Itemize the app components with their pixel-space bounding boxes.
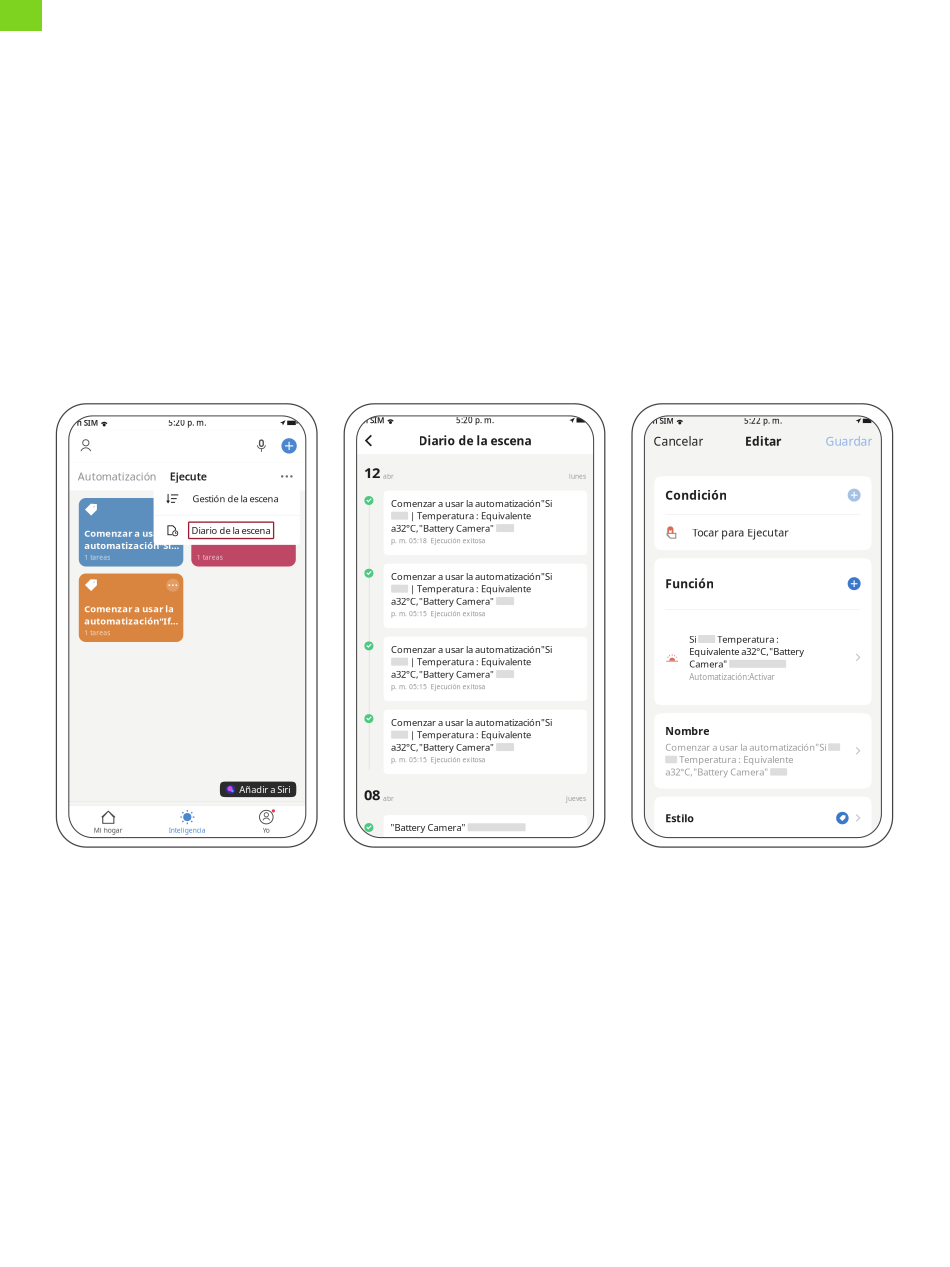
staticText: | Temperatura : Equivalente (408, 655, 531, 668)
staticText: automatización"Si… (84, 539, 179, 552)
button[interactable]: More options (277, 468, 297, 484)
button[interactable]: Comenzar a usar la automatización"Si (384, 637, 587, 701)
button[interactable]: Automatización (78, 469, 157, 483)
staticText: 5:22 p. m. (744, 415, 782, 426)
staticText: | Temperatura : Equivalente (408, 582, 531, 595)
button[interactable]: Voice assistant (255, 439, 267, 453)
staticText: Temperatura : (715, 633, 779, 645)
staticText: | Temperatura : Equivalente (408, 509, 531, 522)
staticText: Equivalente a32°C,"Battery (689, 645, 804, 658)
staticText: 1 tareas (84, 553, 110, 561)
staticText: Comenzar a usar la automatización"Si (391, 570, 552, 582)
button[interactable]: Ejecute (170, 469, 207, 483)
staticText: automatización"If… (84, 615, 178, 627)
staticText: Diario de la escena (192, 524, 271, 536)
button[interactable]: Añadir a Siri (220, 782, 296, 797)
button[interactable]: Comenzar a usar la (79, 573, 183, 642)
button[interactable]: Add function (848, 577, 861, 590)
staticText: Función (665, 576, 714, 592)
staticText: Automatización:Activar (689, 671, 774, 682)
staticText: Comenzar a usar la (84, 527, 174, 539)
staticText: a32°C,"Battery Camera" (391, 668, 496, 680)
staticText: Ejecución exitosa (431, 536, 486, 545)
staticText: Si (689, 633, 698, 645)
staticText: Tocar para Ejecutar (692, 525, 788, 539)
staticText: Condición (665, 487, 727, 503)
staticText: Camera" (689, 658, 729, 670)
staticText: n SIM (77, 417, 98, 428)
staticText: Comenzar a usar la automatización"Si (391, 497, 552, 509)
staticText: p. m. 05:18 (391, 536, 427, 545)
staticText: 1 tareas (84, 628, 110, 637)
staticText: Mi hogar (94, 826, 123, 835)
staticText: 5:20 p. m. (168, 417, 206, 428)
staticText: abr (383, 794, 394, 803)
staticText: jueves (566, 794, 586, 803)
button[interactable]: Diario de la escena (154, 515, 300, 545)
button[interactable]: Si (654, 610, 872, 705)
button[interactable]: Mi hogar (69, 810, 148, 835)
staticText: 1 tareas (197, 553, 223, 561)
staticText: Guardar (825, 433, 872, 449)
staticText: | Temperatura : Equivalente (408, 728, 531, 741)
button[interactable]: Inteligencia (148, 810, 227, 835)
staticText: Comenzar a usar la automatización"Si (391, 716, 552, 728)
button[interactable]: Comenzar a usar la (79, 498, 183, 566)
staticText: Cancelar (653, 433, 703, 449)
staticText: a32°C,"Battery Camera" (391, 741, 496, 753)
button[interactable]: Estilo (654, 797, 872, 840)
staticText: 5:20 p. m. (456, 415, 494, 425)
staticText: a32°C,"Battery Camera" (391, 595, 496, 607)
staticText: Yo (263, 826, 270, 835)
staticText: Ejecución exitosa (431, 609, 486, 618)
staticText: a32°C,"Battery Camera" (665, 766, 770, 778)
button[interactable]: Profile (78, 438, 94, 453)
button[interactable]: Add condition (848, 489, 861, 502)
button[interactable]: Comenzar a usar la automatización"Si (384, 710, 587, 774)
button[interactable] (191, 498, 296, 566)
staticText: Nombre (665, 724, 709, 738)
button[interactable]: Yo (227, 810, 306, 835)
staticText: Ejecute (170, 469, 207, 483)
button[interactable]: Comenzar a usar la automatización"Si (384, 564, 587, 628)
staticText: Automatización (78, 469, 157, 483)
staticText: abr (383, 472, 394, 481)
staticText: Comenzar a usar la automatización"Si (665, 741, 828, 753)
staticText: Ejecución exitosa (431, 755, 486, 764)
staticText: lunes (569, 472, 586, 481)
staticText: n SIM (363, 415, 384, 425)
staticText: Diario de la escena (419, 433, 532, 449)
button[interactable]: Back (364, 434, 373, 447)
staticText: p. m. 05:15 (391, 609, 427, 618)
staticText: "Battery Camera" (391, 821, 468, 833)
button[interactable]: Cancelar (653, 433, 703, 449)
button[interactable]: Add (281, 438, 297, 454)
staticText: Comenzar a usar la (84, 602, 174, 615)
staticText: Gestión de la escena (193, 492, 279, 505)
staticText: Estilo (665, 811, 694, 825)
button[interactable]: Nombre (654, 713, 872, 788)
staticText: n SIM (652, 415, 673, 426)
staticText: Ejecución exitosa (431, 682, 486, 691)
button[interactable]: Gestión de la escena (154, 482, 300, 515)
staticText: 08 (364, 785, 380, 804)
staticText: Temperatura : Equivalente (677, 753, 793, 766)
staticText: Inteligencia (169, 826, 206, 835)
staticText: Añadir a Siri (239, 783, 290, 796)
staticText: Comenzar a usar la automatización"Si (391, 643, 552, 655)
button[interactable]: Guardar (825, 433, 872, 449)
button[interactable]: Comenzar a usar la automatización"Si (384, 491, 587, 555)
staticText: a32°C,"Battery Camera" (391, 522, 496, 534)
staticText: p. m. 05:15 (391, 682, 427, 691)
staticText: p. m. 05:15 (391, 755, 427, 764)
staticText: Editar (745, 433, 781, 449)
staticText: 12 (364, 463, 380, 482)
